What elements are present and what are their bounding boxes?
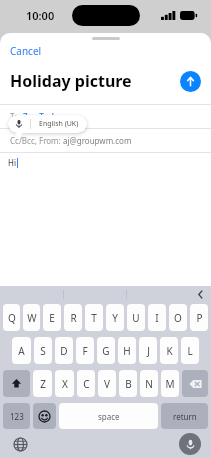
button[interactable]: To: bbox=[0, 105, 211, 128]
button[interactable]: P bbox=[190, 304, 208, 331]
button[interactable]: D bbox=[55, 337, 73, 364]
staticText: C bbox=[83, 377, 90, 391]
button[interactable]: English (UK) bbox=[8, 115, 87, 133]
button[interactable]: M bbox=[161, 370, 179, 397]
staticText: W bbox=[27, 311, 37, 325]
button[interactable]: 123 bbox=[3, 403, 30, 429]
button[interactable]: W bbox=[23, 304, 40, 331]
staticText: Hi bbox=[8, 157, 16, 168]
button[interactable]: Backspace bbox=[182, 370, 208, 397]
button[interactable]: Emoji bbox=[33, 403, 56, 429]
button[interactable]: Z bbox=[33, 370, 52, 397]
button[interactable]: L bbox=[181, 337, 199, 364]
staticText: U bbox=[132, 311, 140, 325]
staticText: B bbox=[125, 377, 132, 391]
staticText: Cancel bbox=[10, 44, 42, 58]
button[interactable]: E bbox=[43, 304, 61, 331]
button[interactable]: Shift bbox=[3, 370, 30, 397]
button[interactable]: Q bbox=[3, 304, 20, 331]
button[interactable]: A bbox=[12, 337, 31, 364]
staticText: To: bbox=[10, 111, 23, 122]
staticText: Zoe Taylor bbox=[23, 111, 63, 122]
staticText: Cc/Bcc, From: bbox=[10, 135, 63, 146]
staticText: 10:00 bbox=[26, 8, 55, 23]
staticText: N bbox=[145, 377, 153, 391]
staticText: Z bbox=[40, 377, 46, 391]
staticText: R bbox=[70, 311, 77, 325]
staticText: aj@groupwm.com bbox=[63, 135, 132, 146]
button[interactable]: J bbox=[139, 337, 157, 364]
staticText: Q bbox=[8, 311, 16, 325]
staticText: O bbox=[174, 311, 182, 325]
button[interactable]: O bbox=[169, 304, 187, 331]
staticText: 123 bbox=[10, 411, 24, 422]
staticText: return bbox=[173, 411, 197, 422]
staticText: K bbox=[166, 344, 173, 358]
staticText: M bbox=[165, 377, 175, 391]
button[interactable]: F bbox=[76, 337, 94, 364]
button[interactable]: X bbox=[55, 370, 74, 397]
button[interactable]: space bbox=[59, 403, 158, 429]
button[interactable]: V bbox=[98, 370, 116, 397]
staticText: I bbox=[155, 311, 159, 325]
staticText: T bbox=[91, 311, 97, 325]
button[interactable]: T bbox=[85, 304, 103, 331]
button[interactable]: return bbox=[161, 403, 208, 429]
staticText: G bbox=[102, 344, 110, 358]
button[interactable]: Change keyboard bbox=[12, 436, 28, 452]
button[interactable]: C bbox=[77, 370, 95, 397]
button[interactable]: I bbox=[148, 304, 166, 331]
staticText: L bbox=[187, 344, 193, 358]
staticText: space bbox=[98, 411, 120, 422]
button[interactable]: Dictate bbox=[179, 433, 201, 455]
staticText: V bbox=[104, 377, 110, 391]
staticText: P bbox=[196, 311, 203, 325]
staticText: Holiday picture bbox=[10, 70, 180, 92]
staticText: A bbox=[18, 344, 25, 358]
button[interactable]: S bbox=[34, 337, 52, 364]
button[interactable]: H bbox=[118, 337, 136, 364]
button[interactable]: N bbox=[140, 370, 158, 397]
button[interactable]: Y bbox=[106, 304, 124, 331]
staticText: D bbox=[60, 344, 68, 358]
staticText: H bbox=[123, 344, 131, 358]
staticText: J bbox=[147, 344, 150, 358]
button[interactable]: B bbox=[119, 370, 137, 397]
button[interactable]: G bbox=[97, 337, 115, 364]
staticText: English (UK) bbox=[39, 119, 79, 129]
button[interactable]: Send bbox=[180, 71, 201, 92]
staticText: F bbox=[82, 344, 88, 358]
button[interactable]: K bbox=[160, 337, 178, 364]
staticText: S bbox=[40, 344, 46, 358]
staticText: X bbox=[62, 377, 68, 391]
button[interactable]: U bbox=[127, 304, 145, 331]
button[interactable]: Collapse bbox=[189, 286, 211, 302]
staticText: Y bbox=[112, 311, 118, 325]
button[interactable]: Cc/Bcc, From: bbox=[0, 129, 211, 152]
button[interactable]: Cancel bbox=[0, 42, 52, 60]
button[interactable]: R bbox=[64, 304, 82, 331]
staticText: E bbox=[49, 311, 55, 325]
